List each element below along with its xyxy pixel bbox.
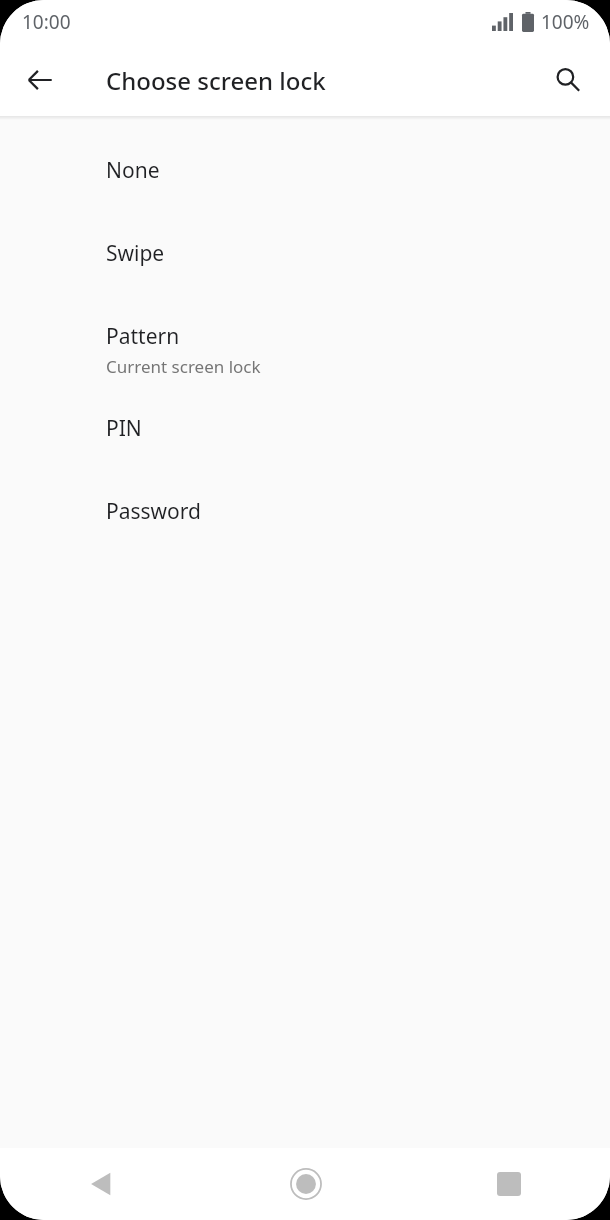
staticText: None — [106, 156, 160, 185]
button[interactable]: Pattern — [0, 308, 610, 400]
button[interactable]: PIN — [0, 400, 610, 483]
staticText: Pattern — [106, 322, 180, 351]
staticText: Swipe — [106, 239, 165, 268]
staticText: Current screen lock — [106, 355, 261, 378]
staticText: 100% — [541, 9, 590, 35]
staticText: PIN — [106, 414, 142, 443]
button[interactable]: Search — [540, 52, 596, 108]
button[interactable]: Recent apps — [407, 1148, 610, 1220]
button[interactable]: Home — [204, 1148, 407, 1220]
button[interactable]: Password — [0, 483, 610, 566]
staticText: 10:00 — [22, 9, 71, 35]
button[interactable]: Back — [0, 1148, 204, 1220]
button[interactable]: None — [0, 142, 610, 225]
button[interactable]: Back — [12, 52, 68, 108]
staticText: Choose screen lock — [106, 64, 326, 97]
staticText: Password — [106, 497, 201, 526]
button[interactable]: Swipe — [0, 225, 610, 308]
